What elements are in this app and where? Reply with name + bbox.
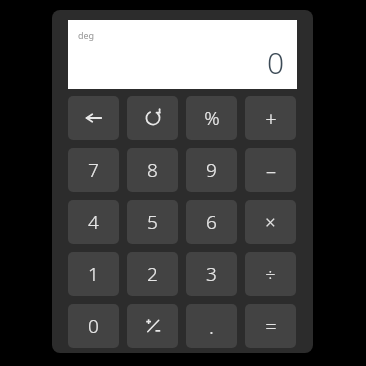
staticText: 0 — [267, 42, 285, 83]
button[interactable]: Clear — [127, 96, 178, 140]
button[interactable]: + — [245, 96, 296, 140]
staticText: – — [266, 157, 276, 184]
staticText: deg — [78, 29, 95, 41]
staticText: + — [265, 105, 277, 132]
button[interactable]: . — [186, 304, 237, 348]
button[interactable]: deg — [68, 20, 297, 89]
button[interactable]: Plus minus sign — [127, 304, 178, 348]
staticText: 6 — [206, 209, 217, 235]
staticText: = — [265, 313, 277, 340]
button[interactable]: – — [245, 148, 296, 192]
button[interactable]: 4 — [68, 200, 119, 244]
staticText: 4 — [88, 209, 99, 235]
staticText: 9 — [206, 157, 217, 183]
button[interactable]: 7 — [68, 148, 119, 192]
staticText: 2 — [147, 261, 158, 287]
button[interactable]: 1 — [68, 252, 119, 296]
button[interactable]: = — [245, 304, 296, 348]
button[interactable]: 0 — [68, 304, 119, 348]
button[interactable]: 9 — [186, 148, 237, 192]
staticText: 5 — [147, 209, 158, 235]
staticText: ÷ — [265, 262, 276, 287]
button[interactable]: × — [245, 200, 296, 244]
button[interactable]: 6 — [186, 200, 237, 244]
button[interactable]: 8 — [127, 148, 178, 192]
button[interactable]: 5 — [127, 200, 178, 244]
button[interactable]: ÷ — [245, 252, 296, 296]
staticText: 8 — [147, 157, 158, 183]
staticText: . — [209, 313, 214, 340]
staticText: 1 — [88, 261, 99, 287]
button[interactable]: Backspace — [68, 96, 119, 140]
staticText: × — [265, 210, 276, 235]
button[interactable]: 2 — [127, 252, 178, 296]
button[interactable]: % — [186, 96, 237, 140]
staticText: 3 — [206, 261, 217, 287]
staticText: 7 — [88, 157, 99, 183]
staticText: % — [204, 105, 220, 131]
staticText: 0 — [88, 313, 99, 339]
button[interactable]: 3 — [186, 252, 237, 296]
